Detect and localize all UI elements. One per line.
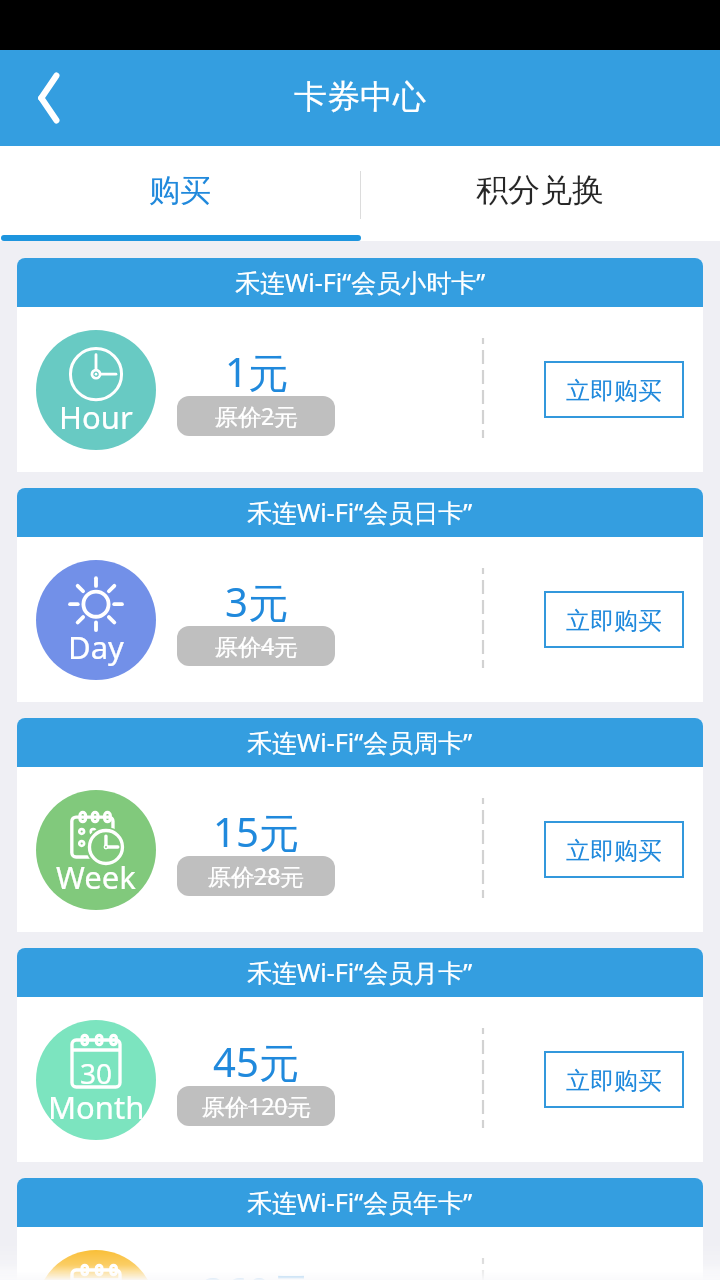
staticText: 原价4元	[215, 630, 298, 661]
staticText: 15元	[213, 804, 299, 859]
staticText: Month	[48, 1086, 145, 1128]
staticText: 卡券中心	[294, 76, 426, 118]
staticText: 立即购买	[566, 376, 662, 406]
staticText: 原价28元	[208, 860, 304, 891]
button[interactable]: 立即购买	[544, 1051, 684, 1108]
staticText: 原价120元	[202, 1090, 311, 1121]
staticText: 3元	[225, 574, 288, 629]
staticText: 禾连Wi-Fi“会员小时卡”	[235, 265, 486, 299]
staticText: 禾连Wi-Fi“会员日卡”	[247, 495, 473, 529]
staticText: 360元	[202, 1264, 311, 1280]
staticText: Day	[68, 626, 124, 668]
button[interactable]: 立即购买	[544, 591, 684, 648]
staticText: 立即购买	[566, 836, 662, 866]
staticText: 原价2元	[215, 400, 298, 431]
staticText: 禾连Wi-Fi“会员月卡”	[247, 955, 473, 989]
staticText: 立即购买	[566, 606, 662, 636]
staticText: 立即购买	[566, 1066, 662, 1096]
button[interactable]: 购买	[0, 146, 360, 234]
staticText: Hour	[59, 396, 133, 438]
staticText: 禾连Wi-Fi“会员周卡”	[247, 725, 473, 759]
staticText: 禾连Wi-Fi“会员年卡”	[247, 1185, 473, 1219]
button[interactable]: Back	[0, 50, 96, 146]
staticText: 1元	[225, 344, 288, 399]
button[interactable]: 立即购买	[544, 821, 684, 878]
button[interactable]: 积分兑换	[360, 146, 720, 234]
staticText: Week	[56, 856, 136, 898]
staticText: 购买	[149, 171, 211, 210]
staticText: 45元	[213, 1034, 299, 1089]
staticText: 积分兑换	[476, 170, 604, 210]
button[interactable]: 立即购买	[544, 361, 684, 418]
staticText: 30	[80, 1054, 113, 1092]
